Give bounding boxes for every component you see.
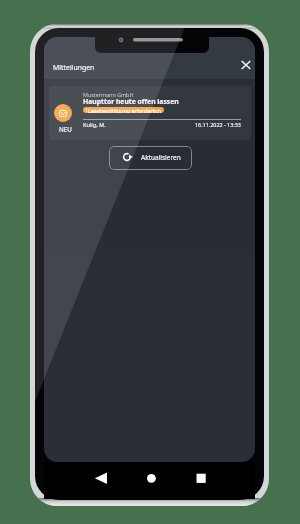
staticText: Lesebestätigung erforderlich — [88, 107, 162, 113]
staticText: Mustermann GmbH — [83, 91, 134, 98]
staticText: NEU — [59, 125, 72, 134]
button[interactable]: Schliessen — [238, 57, 254, 73]
button[interactable]: NEU — [49, 86, 251, 140]
staticText: Mitteilungen — [53, 63, 95, 72]
staticText: Haupttor heute offen lassen — [83, 97, 179, 106]
staticText: Aktualisieren — [141, 153, 181, 162]
staticText: Kulig, M. — [83, 121, 106, 129]
button[interactable]: Aktualisieren — [109, 146, 192, 170]
staticText: 16.11.2022 - 13:33 — [195, 121, 241, 128]
